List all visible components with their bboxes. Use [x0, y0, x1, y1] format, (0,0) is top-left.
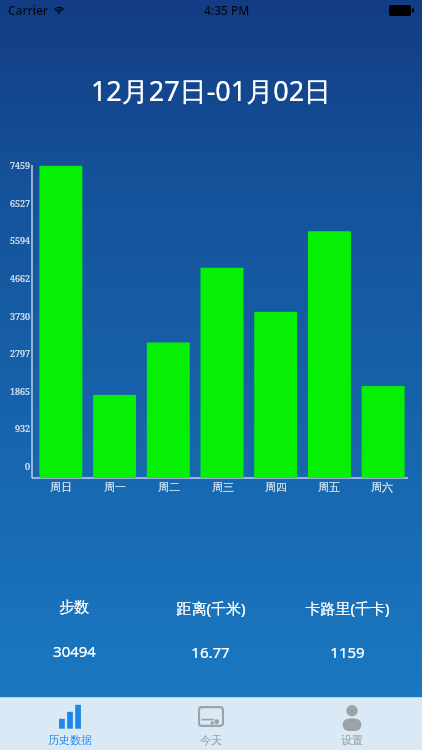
- staticText: 周六: [371, 480, 393, 494]
- staticText: 30494: [53, 641, 96, 661]
- staticText: 设置: [341, 733, 363, 747]
- staticText: 历史数据: [48, 733, 92, 747]
- staticText: 0: [24, 460, 30, 472]
- staticText: 7459: [9, 159, 30, 171]
- staticText: 1865: [9, 385, 30, 397]
- staticText: Carrier: [8, 2, 48, 18]
- other: Today: [198, 704, 224, 730]
- other: Settings: [339, 704, 365, 730]
- staticText: 周五: [318, 480, 340, 494]
- staticText: 周二: [158, 480, 180, 494]
- button[interactable]: Settings: [281, 698, 422, 750]
- staticText: 16.77: [191, 642, 230, 662]
- staticText: 2797: [9, 347, 30, 359]
- staticText: 周三: [212, 480, 234, 494]
- staticText: 步数: [59, 598, 89, 617]
- button[interactable]: History data: [0, 698, 140, 750]
- staticText: 卡路里(千卡): [305, 598, 390, 618]
- staticText: 1159: [330, 642, 365, 662]
- staticText: 4:35 PM: [204, 2, 250, 18]
- staticText: 12月27日-01月02日: [0, 72, 422, 109]
- staticText: 5594: [9, 234, 30, 246]
- staticText: 周四: [265, 480, 287, 494]
- button[interactable]: Today: [140, 698, 281, 750]
- other: History data: [57, 704, 83, 730]
- staticText: 3730: [9, 310, 30, 322]
- staticText: 距离(千米): [176, 598, 246, 618]
- staticText: 今天: [200, 733, 222, 747]
- staticText: 周日: [50, 480, 72, 494]
- staticText: 4662: [9, 272, 30, 284]
- staticText: 6527: [9, 197, 30, 209]
- staticText: 932: [14, 422, 30, 434]
- staticText: 周一: [104, 480, 126, 494]
